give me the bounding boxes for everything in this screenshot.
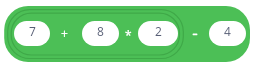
button[interactable]: +: [54, 23, 74, 43]
button[interactable]: 4: [209, 21, 246, 46]
button[interactable]: 7: [14, 21, 50, 46]
staticText: 8: [97, 23, 104, 39]
staticText: 2: [155, 23, 162, 39]
button[interactable]: [186, 26, 204, 42]
staticText: 7: [29, 23, 36, 39]
button[interactable]: *: [118, 25, 138, 45]
staticText: *: [125, 27, 132, 43]
button[interactable]: 2: [138, 21, 178, 46]
button[interactable]: 8: [82, 21, 119, 46]
staticText: 4: [224, 23, 231, 39]
staticText: +: [61, 25, 68, 41]
